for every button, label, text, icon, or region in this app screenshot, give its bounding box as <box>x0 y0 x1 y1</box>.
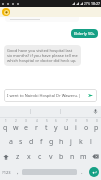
staticText: m <box>80 152 87 162</box>
button[interactable]: v <box>45 149 56 164</box>
staticText: s <box>19 137 23 147</box>
staticText: b <box>59 152 64 162</box>
button[interactable]: 4 <box>31 118 41 134</box>
button[interactable]: f <box>36 134 46 149</box>
staticText: . <box>81 168 83 176</box>
staticText: t <box>45 123 48 133</box>
button[interactable]: Profile <box>2 8 10 16</box>
button[interactable]: 2 <box>11 118 21 134</box>
button[interactable]: g <box>46 134 56 149</box>
button[interactable]: b <box>56 149 67 164</box>
button[interactable]: Elderly 50+ <box>71 29 98 38</box>
button[interactable]: l <box>86 134 96 149</box>
button[interactable]: k <box>76 134 86 149</box>
staticText: 18:27 <box>91 1 100 6</box>
staticText: n <box>70 152 75 162</box>
staticText: k <box>79 137 83 147</box>
button[interactable]: m <box>78 149 89 164</box>
button[interactable]: Voice input <box>90 106 101 117</box>
button[interactable]: 8 <box>71 118 81 134</box>
staticText: 4 <box>36 119 38 123</box>
button[interactable]: 3 <box>21 118 31 134</box>
button[interactable]: 6 <box>51 118 61 134</box>
button[interactable]: Backspace <box>89 149 101 164</box>
button[interactable]: z <box>12 149 23 164</box>
staticText: 0 <box>96 119 98 123</box>
staticText: d <box>29 137 34 147</box>
button[interactable]: 5 <box>41 118 51 134</box>
staticText: w <box>13 123 19 133</box>
button[interactable]: , <box>13 164 22 180</box>
button[interactable]: 7 <box>61 118 71 134</box>
staticText: j <box>70 137 72 147</box>
staticText: 8 <box>75 119 77 123</box>
button[interactable]: Shift <box>0 149 12 164</box>
staticText: , <box>17 168 19 176</box>
button[interactable]: x <box>23 149 34 164</box>
staticText: Elderly 50+ <box>74 31 95 36</box>
staticText: v <box>49 152 53 162</box>
staticText: y <box>54 123 58 133</box>
staticText: 9 <box>86 119 88 123</box>
button[interactable]: 0 <box>91 118 101 134</box>
staticText: ?123 <box>2 170 11 175</box>
staticText: 2 <box>15 119 17 123</box>
staticText: f <box>40 137 43 147</box>
staticText: q <box>3 123 8 133</box>
button[interactable]: Good have you visited hospital last six … <box>4 45 81 66</box>
staticText: g <box>49 137 54 147</box>
button[interactable]: c <box>34 149 45 164</box>
staticText: 3 <box>25 119 27 123</box>
staticText: I went to Nairobi Hospital Dr Waweru.| <box>7 93 85 98</box>
staticText: u <box>64 123 69 133</box>
button[interactable]: j <box>66 134 76 149</box>
button[interactable]: s <box>16 134 26 149</box>
button[interactable]: a <box>5 134 16 149</box>
button[interactable]: . <box>77 164 86 180</box>
staticText: r <box>35 123 38 133</box>
button[interactable]: ?123 <box>0 164 13 180</box>
button[interactable]: Enter <box>86 164 101 180</box>
staticText: 1 <box>5 119 7 123</box>
staticText: 5 <box>46 119 48 123</box>
staticText: c <box>38 152 42 162</box>
staticText: h <box>59 137 64 147</box>
staticText: z <box>16 152 20 162</box>
staticText: i <box>75 123 77 133</box>
staticText: Good have you visited hospital last six … <box>7 48 78 63</box>
staticText: 7 <box>66 119 68 123</box>
staticText: 27% <box>84 2 90 6</box>
staticText: p <box>94 123 99 133</box>
button[interactable]: 1 <box>0 118 11 134</box>
button[interactable]: n <box>67 149 78 164</box>
staticText: o <box>84 123 89 133</box>
staticText: 6 <box>55 119 57 123</box>
button[interactable]: h <box>56 134 66 149</box>
button[interactable] <box>22 167 77 177</box>
staticText: e <box>24 123 28 133</box>
button[interactable]: Send <box>87 92 94 99</box>
staticText: l <box>90 137 92 147</box>
staticText: x <box>27 152 31 162</box>
button[interactable]: d <box>26 134 36 149</box>
staticText: a <box>9 137 13 147</box>
button[interactable]: I went to Nairobi Hospital Dr Waweru.| <box>4 89 97 102</box>
button[interactable]: 9 <box>81 118 91 134</box>
